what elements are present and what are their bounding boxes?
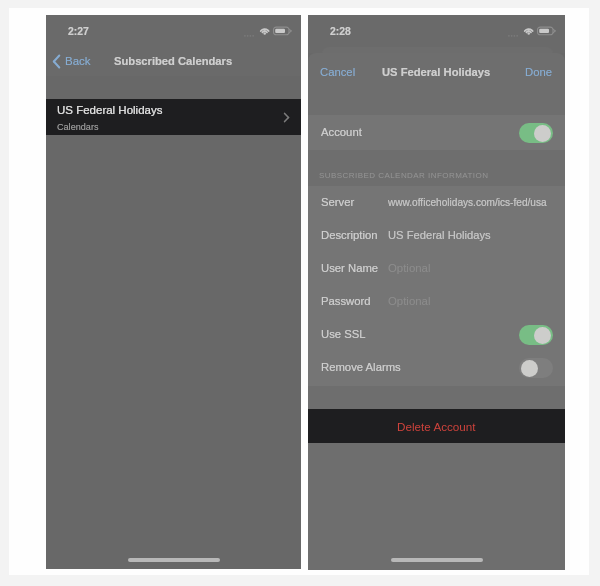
button[interactable]: Cancel — [320, 66, 356, 79]
button[interactable]: Server — [308, 186, 565, 219]
staticText: www.officeholidays.com/ics-fed/usa — [388, 197, 547, 208]
staticText: US Federal Holidays — [382, 66, 491, 79]
staticText: SUBSCRIBED CALENDAR INFORMATION — [319, 171, 489, 180]
staticText: Remove Alarms — [321, 361, 401, 374]
staticText: Optional — [388, 295, 431, 308]
button[interactable]: Back — [53, 48, 91, 74]
staticText: User Name — [321, 262, 379, 275]
button[interactable]: Delete Account — [308, 409, 565, 443]
button[interactable]: Switch off — [519, 358, 553, 378]
button[interactable]: Password — [308, 285, 565, 318]
button[interactable]: Use SSL — [308, 318, 565, 351]
button[interactable]: Account — [308, 115, 565, 150]
button[interactable]: Done — [525, 66, 553, 79]
staticText: Back — [65, 55, 91, 68]
staticText: Subscribed Calendars — [114, 55, 233, 68]
button[interactable]: Switch on — [519, 325, 553, 345]
staticText: Use SSL — [321, 328, 366, 341]
button[interactable]: User Name — [308, 252, 565, 285]
staticText: Description — [321, 229, 378, 242]
button[interactable]: Description — [308, 219, 565, 252]
staticText: Account — [321, 126, 362, 139]
button[interactable]: Remove Alarms — [308, 351, 565, 384]
staticText: Password — [321, 295, 371, 308]
staticText: Optional — [388, 262, 431, 275]
staticText: US Federal Holidays — [388, 229, 491, 242]
staticText: US Federal Holidays — [57, 104, 163, 117]
staticText: Calendars — [57, 122, 99, 132]
staticText: Delete Account — [397, 420, 476, 433]
staticText: 2:27 — [68, 26, 89, 38]
staticText: 2:28 — [330, 26, 351, 38]
button[interactable]: US Federal Holidays — [46, 99, 301, 135]
button[interactable]: Switch on — [519, 123, 553, 143]
staticText: Server — [321, 196, 355, 209]
